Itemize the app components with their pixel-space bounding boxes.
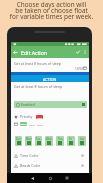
button[interactable]: Float (29, 122, 35, 126)
button[interactable]: Recents (63, 174, 71, 182)
staticText: High (37, 116, 43, 119)
staticText: Mon (26, 137, 32, 141)
button[interactable]: Repeat (20, 122, 27, 126)
button[interactable]: Back (11, 46, 89, 58)
staticText: Repeat (20, 122, 27, 126)
button[interactable]: Beads Color (11, 162, 89, 169)
staticText: Time Color (20, 153, 39, 158)
staticText: Edit Action (21, 49, 47, 56)
staticText: Priority (20, 114, 33, 119)
button[interactable]: Priority (11, 113, 89, 120)
staticText: Tue (36, 137, 41, 141)
staticText: Get at least 8 hours of sleep (14, 61, 62, 66)
button[interactable]: Once (37, 122, 43, 126)
button[interactable]: Sun (15, 136, 22, 146)
button[interactable]: Fri (67, 136, 75, 146)
staticText: Fri (69, 137, 73, 141)
button[interactable]: Tue (35, 136, 42, 146)
button[interactable]: Time Color (11, 152, 89, 159)
staticText: Beads Color (20, 163, 41, 168)
staticText: Wed (46, 137, 52, 141)
button[interactable]: Back (12, 49, 19, 56)
button[interactable]: Save (74, 48, 82, 56)
staticText: Once (37, 123, 43, 126)
staticText: 14/50 (75, 67, 83, 71)
staticText: Sun (16, 137, 21, 141)
staticText: Get at least 8 hours of sleep (14, 84, 63, 89)
button[interactable]: Wed (45, 136, 53, 146)
button[interactable]: Thu (56, 136, 64, 146)
button[interactable]: Home (46, 174, 54, 182)
button[interactable]: Mon (25, 136, 32, 146)
staticText: Choose days action will be taken or choo… (0, 0, 103, 21)
staticText: ACTION (43, 77, 57, 82)
staticText: Sat (80, 137, 84, 141)
staticText: Thu (58, 137, 63, 141)
staticText: Float (29, 123, 35, 126)
button[interactable]: Back (28, 174, 36, 182)
button[interactable]: More options (81, 48, 89, 56)
button[interactable]: Enabled (14, 101, 87, 108)
staticText: Enabled (21, 102, 35, 107)
button[interactable]: Sat (78, 136, 86, 146)
